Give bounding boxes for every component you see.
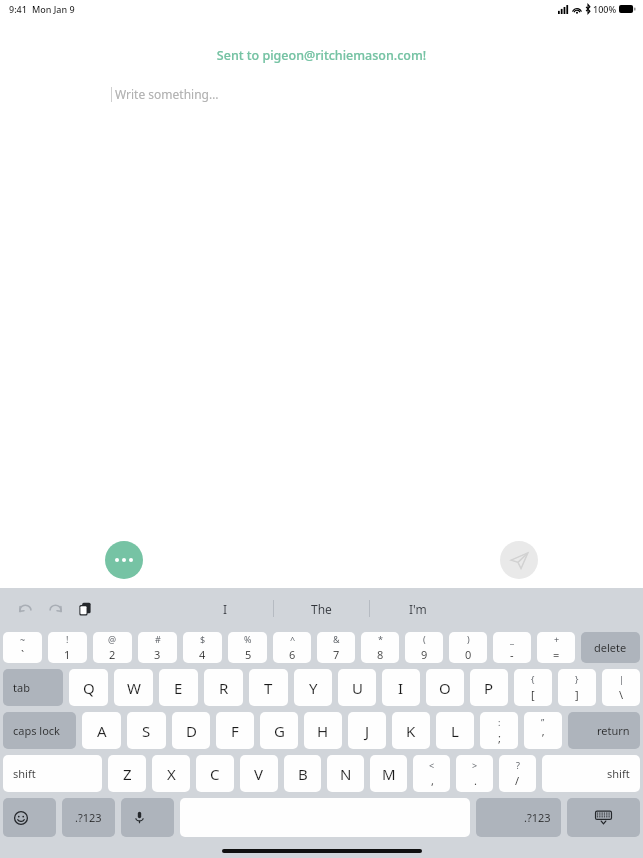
staticText: X — [167, 764, 176, 784]
button[interactable]: ( — [405, 632, 443, 663]
staticText: W — [127, 678, 141, 698]
button[interactable]: shift — [542, 755, 640, 792]
button[interactable]: Emoji — [3, 798, 56, 837]
button[interactable]: X — [152, 755, 190, 792]
button[interactable]: : — [480, 712, 518, 749]
staticText: shift — [607, 766, 630, 781]
button[interactable]: Hide keyboard — [567, 798, 640, 837]
button[interactable]: A — [82, 712, 121, 749]
button[interactable]: $ — [183, 632, 222, 663]
staticText: V — [254, 764, 264, 784]
button[interactable]: @ — [93, 632, 132, 663]
button[interactable]: Paste — [72, 596, 98, 622]
button[interactable]: Dictation — [121, 798, 174, 837]
button[interactable]: Y — [294, 669, 332, 706]
button[interactable]: F — [216, 712, 254, 749]
button[interactable]: C — [196, 755, 234, 792]
button[interactable]: Q — [69, 669, 108, 706]
button[interactable]: O — [426, 669, 464, 706]
button[interactable]: V — [240, 755, 278, 792]
button[interactable]: delete — [581, 632, 640, 663]
staticText: Sent to pigeon@ritchiemason.com! — [0, 47, 643, 64]
button[interactable]: _ — [493, 632, 531, 663]
button[interactable]: * — [361, 632, 399, 663]
staticText: - — [510, 647, 514, 662]
staticText: ” — [541, 716, 545, 728]
button[interactable]: ^ — [273, 632, 311, 663]
button[interactable]: Redo — [42, 596, 68, 622]
staticText: } — [575, 673, 579, 685]
button[interactable]: > — [456, 755, 493, 792]
button[interactable]: More options — [105, 541, 143, 579]
button[interactable]: T — [249, 669, 288, 706]
button[interactable]: S — [127, 712, 166, 749]
staticText: ( — [423, 633, 426, 645]
staticText: B — [298, 764, 308, 784]
button[interactable]: { — [514, 669, 552, 706]
staticText: M — [382, 764, 396, 784]
staticText: C — [210, 764, 220, 784]
button[interactable]: J — [348, 712, 386, 749]
staticText: _ — [510, 633, 514, 645]
staticText: The — [311, 601, 332, 617]
staticText: ] — [575, 687, 579, 702]
button[interactable]: N — [327, 755, 364, 792]
staticText: K — [406, 721, 416, 741]
staticText: { — [531, 673, 535, 685]
staticText: G — [274, 721, 285, 741]
button[interactable]: & — [317, 632, 355, 663]
staticText: E — [174, 678, 183, 698]
button[interactable]: I'm — [370, 588, 466, 629]
staticText: .?123 — [524, 810, 551, 825]
button[interactable]: R — [204, 669, 243, 706]
button[interactable]: + — [537, 632, 575, 663]
button[interactable]: ) — [449, 632, 487, 663]
staticText: ` — [21, 647, 25, 662]
staticText: L — [451, 721, 459, 741]
button[interactable]: I — [177, 588, 273, 629]
button[interactable]: # — [138, 632, 177, 663]
staticText: @ — [108, 633, 117, 645]
button[interactable]: return — [568, 712, 640, 749]
button[interactable]: ? — [499, 755, 536, 792]
button[interactable]: K — [392, 712, 430, 749]
button[interactable]: P — [470, 669, 508, 706]
button[interactable]: M — [370, 755, 407, 792]
button[interactable]: Send — [500, 541, 538, 579]
staticText: = — [553, 647, 560, 662]
button[interactable]: shift — [3, 755, 102, 792]
staticText: , — [431, 773, 434, 788]
button[interactable]: D — [172, 712, 210, 749]
button[interactable]: ~ — [3, 632, 42, 663]
button[interactable]: ! — [48, 632, 87, 663]
button[interactable]: .?123 — [62, 798, 115, 837]
button[interactable]: H — [304, 712, 342, 749]
button[interactable]: U — [338, 669, 376, 706]
button[interactable]: Z — [108, 755, 146, 792]
button[interactable]: tab — [3, 669, 63, 706]
button[interactable]: .?123 — [476, 798, 561, 837]
button[interactable]: % — [228, 632, 267, 663]
button[interactable]: The — [274, 588, 369, 629]
button[interactable]: B — [284, 755, 321, 792]
button[interactable]: E — [159, 669, 198, 706]
staticText: shift — [13, 766, 36, 781]
staticText: R — [219, 678, 229, 698]
staticText: delete — [594, 640, 627, 655]
button[interactable]: | — [602, 669, 640, 706]
button[interactable]: G — [260, 712, 298, 749]
button[interactable]: I — [382, 669, 420, 706]
button[interactable]: } — [558, 669, 596, 706]
button[interactable]: ” — [524, 712, 562, 749]
staticText: / — [515, 773, 520, 788]
staticText: ? — [516, 759, 520, 771]
button[interactable]: L — [436, 712, 474, 749]
button[interactable]: Undo — [12, 596, 38, 622]
staticText: 8 — [377, 647, 384, 662]
staticText: \ — [619, 687, 624, 702]
staticText: Write something… — [115, 86, 219, 102]
button[interactable]: W — [114, 669, 153, 706]
button[interactable]: < — [413, 755, 450, 792]
button[interactable]: caps lock — [3, 712, 76, 749]
